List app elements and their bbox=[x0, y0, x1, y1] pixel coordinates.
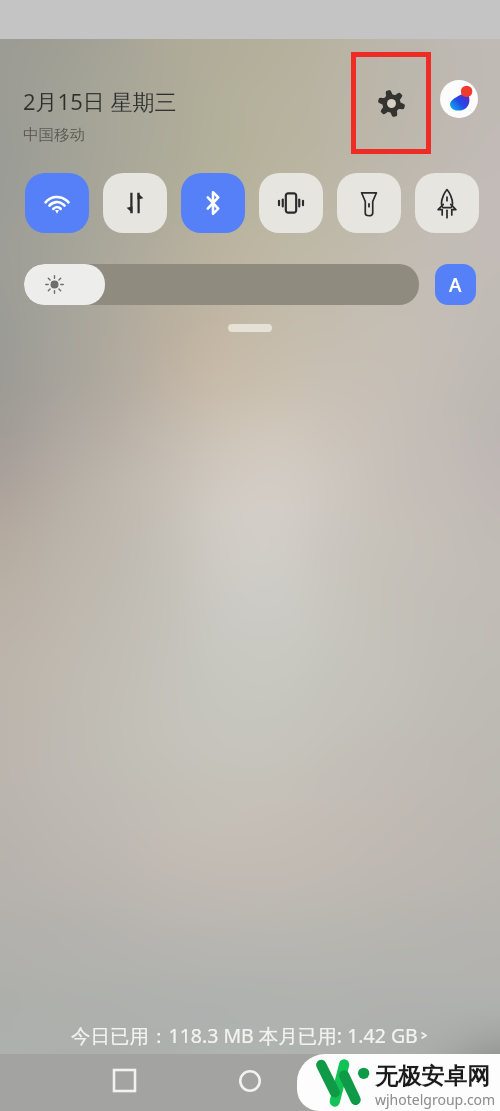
button[interactable]: Theme store bbox=[440, 80, 478, 118]
button[interactable]: Brightness bbox=[24, 264, 419, 305]
button[interactable]: Home bbox=[239, 1070, 261, 1092]
button[interactable]: Settings bbox=[351, 52, 431, 154]
button[interactable]: Wi-Fi bbox=[25, 173, 89, 233]
button[interactable]: Bluetooth bbox=[181, 173, 245, 233]
button[interactable]: Recents bbox=[114, 1070, 135, 1091]
staticText: 无极安卓网 bbox=[375, 1062, 490, 1091]
staticText: wjhotelgroup.com bbox=[375, 1090, 496, 1109]
button[interactable]: 今日已用：118.3 MB 本月已用: 1.42 GB bbox=[0, 1022, 500, 1049]
button[interactable]: Flashlight bbox=[337, 173, 401, 233]
button[interactable]: Auto brightness bbox=[435, 264, 476, 305]
staticText: A bbox=[449, 272, 462, 298]
button[interactable]: Mobile data bbox=[103, 173, 167, 233]
staticText: 今日已用：118.3 MB 本月已用: 1.42 GB bbox=[71, 1022, 418, 1049]
button[interactable]: Vibrate bbox=[259, 173, 323, 233]
button[interactable]: Boost bbox=[415, 173, 479, 233]
staticText: 2月15日 星期三 bbox=[23, 86, 177, 116]
staticText: 中国移动 bbox=[23, 125, 85, 145]
